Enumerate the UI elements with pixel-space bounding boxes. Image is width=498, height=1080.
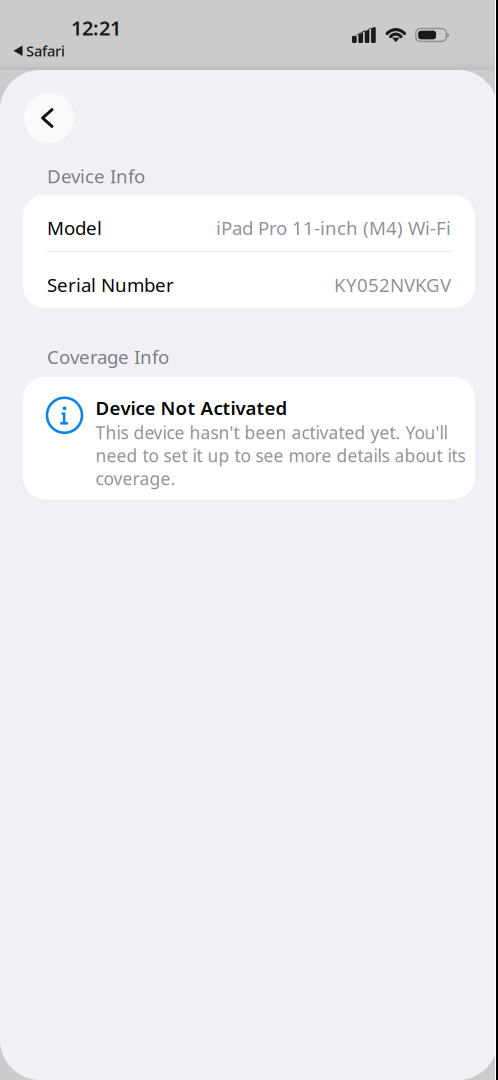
button[interactable]: Model [23,195,475,251]
staticText: KY052NVKGV [334,272,451,297]
staticText: This device hasn't been activated yet. Y… [95,421,465,490]
button[interactable]: Back [24,93,74,143]
staticText: Device Not Activated [95,395,287,420]
staticText: Coverage Info [47,344,169,369]
staticText: Device Info [47,163,145,188]
staticText: iPad Pro 11-inch (M4) Wi-Fi [216,215,451,240]
staticText: 12:21 [71,14,121,41]
staticText: Model [47,215,102,240]
staticText: Safari [26,41,65,60]
button[interactable]: Serial Number [23,252,475,308]
staticText: Serial Number [47,272,174,297]
